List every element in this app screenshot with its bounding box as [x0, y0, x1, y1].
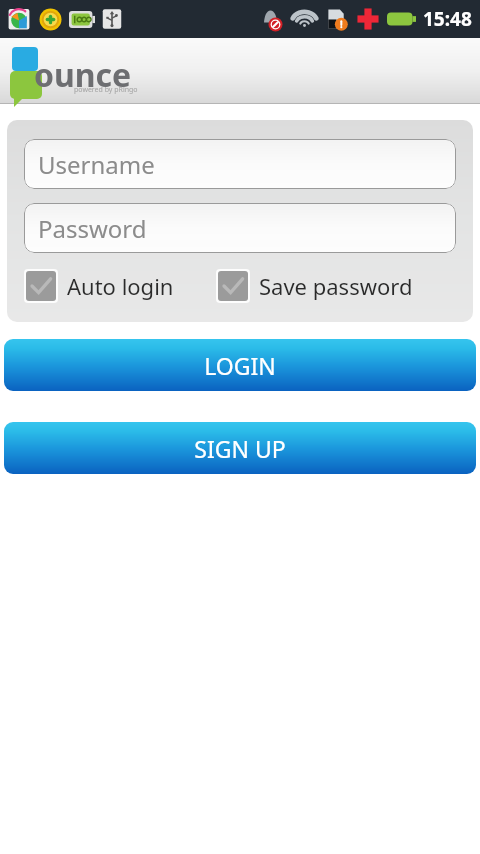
button[interactable]: SIGN UP — [4, 422, 476, 474]
staticText: 15:48 — [423, 6, 472, 32]
staticText: powered by pRingo — [74, 85, 138, 95]
staticText: Save password — [259, 271, 413, 301]
staticText: Auto login — [67, 271, 174, 301]
button[interactable]: Username — [24, 139, 456, 189]
button[interactable]: LOGIN — [4, 339, 476, 391]
button[interactable]: Password — [24, 203, 456, 253]
staticText: ounce — [34, 53, 132, 97]
staticText: SIGN UP — [194, 433, 286, 464]
staticText: Username — [38, 148, 155, 181]
staticText: Password — [38, 212, 147, 245]
button[interactable]: Save password — [216, 269, 456, 303]
staticText: LOGIN — [204, 350, 276, 381]
button[interactable]: Auto login — [24, 269, 216, 303]
